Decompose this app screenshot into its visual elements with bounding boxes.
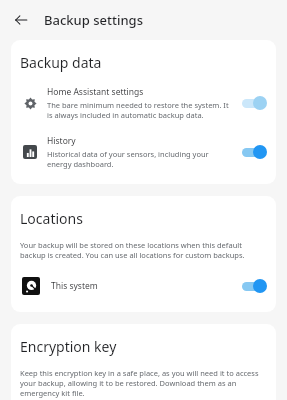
- staticText: Your backup will be stored on these loca…: [20, 240, 267, 260]
- staticText: Keep this encryption key in a safe place…: [20, 368, 267, 398]
- staticText: Encryption key: [20, 337, 117, 356]
- button[interactable]: Home Assistant settings: [11, 83, 276, 123]
- button[interactable]: History: [11, 132, 276, 172]
- staticText: Backup data: [20, 53, 102, 72]
- staticText: Home Assistant settings: [47, 86, 144, 98]
- staticText: History: [47, 135, 76, 147]
- staticText: This system: [51, 280, 241, 292]
- button[interactable]: This system: [11, 273, 276, 299]
- staticText: The bare minimum needed to restore the s…: [47, 100, 235, 120]
- button[interactable]: Back: [9, 8, 33, 32]
- staticText: Historical data of your sensors, includi…: [47, 149, 235, 169]
- button[interactable]: Toggle: [241, 278, 267, 294]
- staticText: Locations: [20, 209, 83, 228]
- staticText: Backup settings: [44, 11, 143, 29]
- button[interactable]: Toggle: [241, 144, 267, 160]
- button[interactable]: Toggle: [241, 95, 267, 111]
